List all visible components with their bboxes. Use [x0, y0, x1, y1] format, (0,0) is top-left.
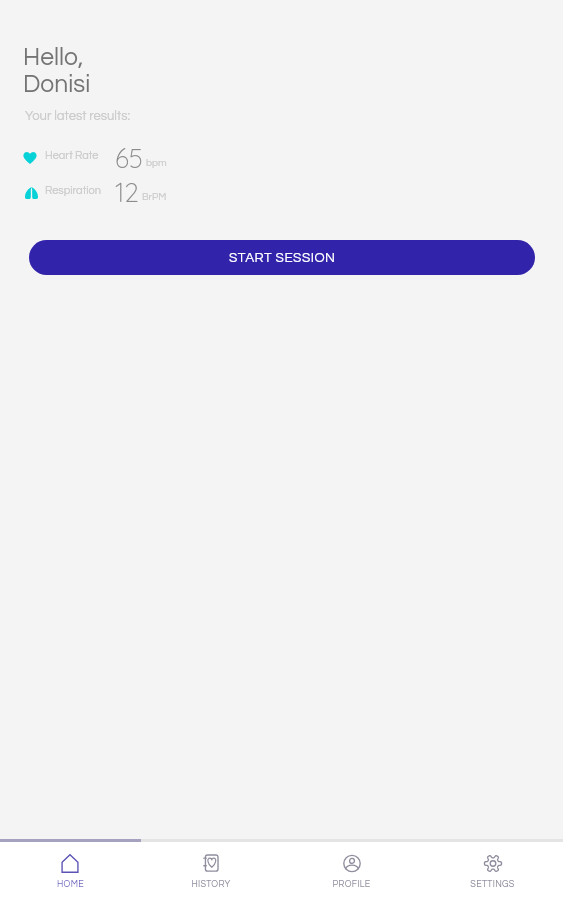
- button[interactable]: PROFILE: [281, 842, 422, 900]
- button[interactable]: HOME: [0, 842, 140, 900]
- staticText: HOME: [57, 880, 84, 889]
- staticText: 65: [115, 142, 143, 172]
- button[interactable]: SETTINGS: [422, 842, 563, 900]
- staticText: START SESSION: [229, 251, 336, 265]
- staticText: BrPM: [142, 192, 167, 202]
- staticText: PROFILE: [332, 880, 371, 889]
- staticText: Donisi: [23, 72, 91, 97]
- button[interactable]: HISTORY: [140, 842, 281, 900]
- staticText: HISTORY: [191, 880, 231, 889]
- staticText: Hello,: [23, 45, 84, 70]
- staticText: Respiration: [45, 185, 101, 196]
- button[interactable]: START SESSION: [29, 240, 535, 275]
- staticText: SETTINGS: [470, 880, 515, 889]
- staticText: 12: [115, 176, 139, 206]
- staticText: Heart Rate: [45, 150, 99, 161]
- staticText: bpm: [146, 158, 167, 168]
- staticText: Your latest results:: [25, 109, 131, 122]
